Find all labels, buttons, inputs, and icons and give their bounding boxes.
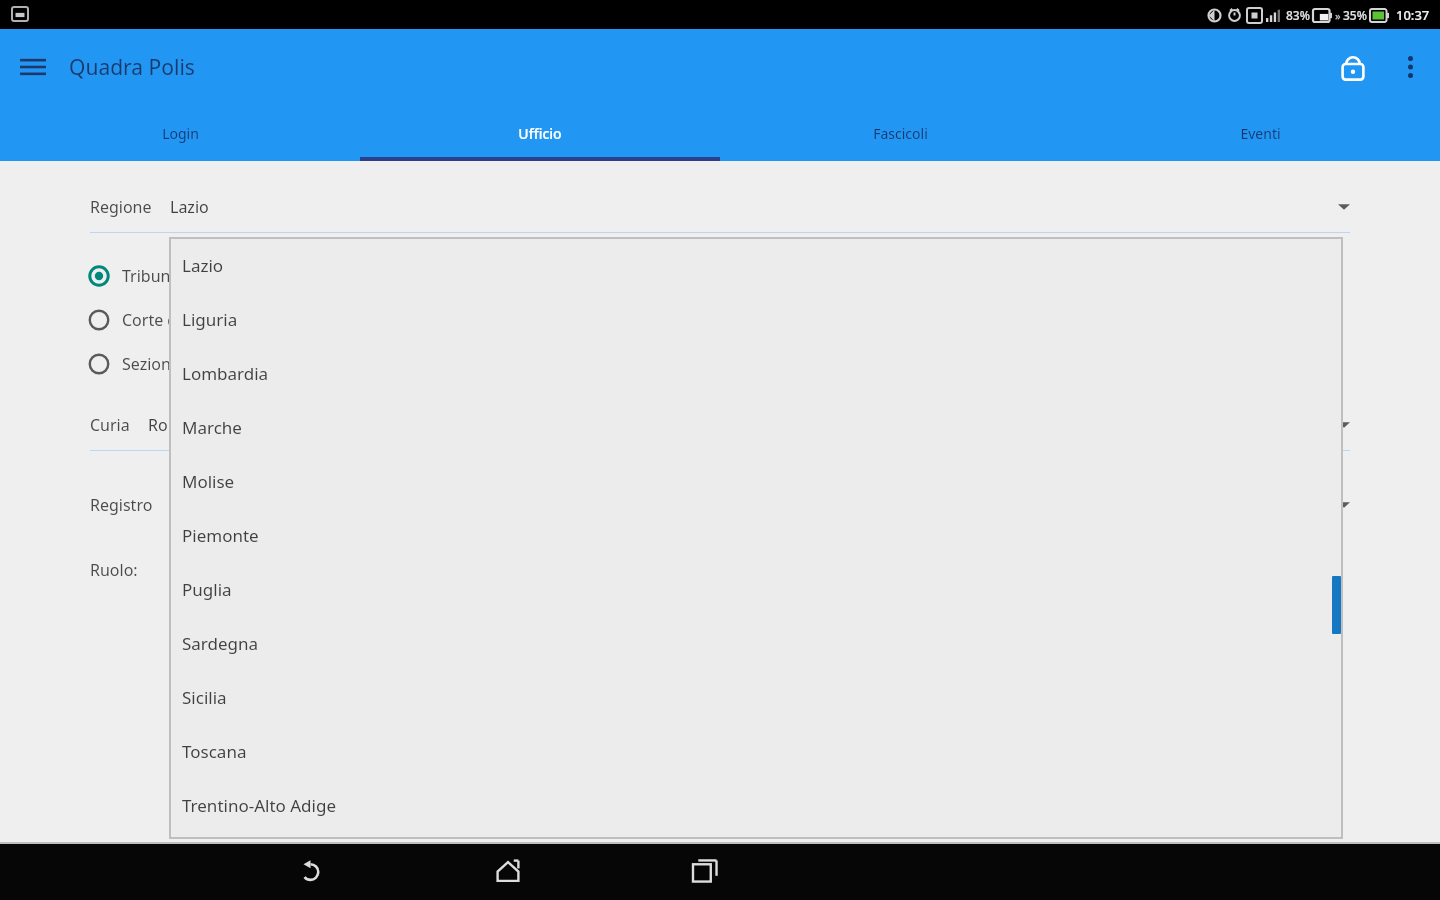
staticText: Toscana	[182, 740, 247, 763]
staticText: Trentino-Alto Adige	[182, 794, 337, 817]
button[interactable]: Corte d'Appello	[88, 303, 1350, 337]
button[interactable]: Recent apps	[677, 843, 733, 899]
button[interactable]: Toscana	[170, 724, 1342, 778]
staticText: Registro	[90, 494, 153, 516]
staticText: Fascicoli	[873, 124, 928, 143]
button[interactable]: Sezione Distaccata	[88, 347, 1350, 381]
button[interactable]: Lazio	[170, 238, 1342, 292]
staticText: Login	[162, 124, 199, 143]
button[interactable]	[171, 487, 1350, 523]
button[interactable]: Puglia	[170, 562, 1342, 616]
staticText: Lazio	[170, 196, 209, 218]
staticText: Quadra Polis	[69, 53, 195, 82]
button[interactable]: Login	[0, 105, 360, 161]
button[interactable]: Tribunale	[88, 259, 1350, 293]
staticText: Lazio	[182, 254, 224, 277]
button[interactable]: Back	[283, 843, 339, 899]
button[interactable]: Liguria	[170, 292, 1342, 346]
staticText: Lombardia	[182, 362, 269, 385]
staticText: Sezione Distaccata	[122, 353, 262, 375]
button[interactable]: Home	[480, 843, 536, 899]
button[interactable]: Marche	[170, 400, 1342, 454]
button[interactable]: Roma	[148, 407, 1350, 443]
button[interactable]: Ufficio	[360, 105, 720, 161]
button[interactable]: Eventi	[1080, 105, 1440, 161]
staticText: Curia	[90, 414, 130, 436]
staticText: 35%	[1343, 7, 1367, 23]
button[interactable]: Molise	[170, 454, 1342, 508]
staticText: Eventi	[1240, 124, 1281, 143]
staticText: Ruolo:	[90, 559, 138, 581]
button[interactable]: Sardegna	[170, 616, 1342, 670]
staticText: Molise	[182, 470, 235, 493]
button[interactable]: Navigation menu	[10, 44, 56, 90]
staticText: Regione	[90, 196, 152, 218]
button[interactable]: Sicilia	[170, 670, 1342, 724]
button[interactable]: Lock	[1328, 42, 1378, 92]
button[interactable]: Lazio	[170, 189, 1350, 225]
button[interactable]: More options	[1388, 45, 1432, 89]
staticText: Ufficio	[518, 124, 562, 143]
button[interactable]: Fascicoli	[720, 105, 1080, 161]
staticText: Corte d'Appello	[122, 309, 237, 331]
staticText: Sicilia	[182, 686, 227, 709]
staticText: 83%	[1286, 7, 1310, 23]
button[interactable]: Lombardia	[170, 346, 1342, 400]
staticText: 10:37	[1396, 6, 1430, 24]
staticText: Piemonte	[182, 524, 259, 547]
staticText: Tribunale	[122, 265, 193, 287]
button[interactable]: Trentino-Alto Adige	[170, 778, 1342, 832]
staticText: Marche	[182, 416, 242, 439]
staticText: Puglia	[182, 578, 232, 601]
staticText: Roma	[148, 414, 192, 436]
staticText: Sardegna	[182, 632, 259, 655]
button[interactable]: Piemonte	[170, 508, 1342, 562]
staticText: Liguria	[182, 308, 238, 331]
staticText: »	[1335, 8, 1341, 23]
